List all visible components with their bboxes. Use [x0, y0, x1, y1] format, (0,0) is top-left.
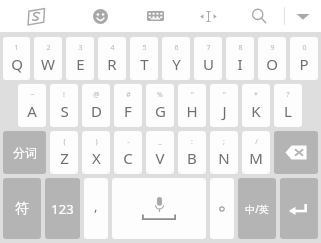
- staticText: C: [123, 148, 133, 168]
- staticText: 0: [302, 43, 307, 53]
- button[interactable]: 分词: [3, 131, 46, 174]
- button[interactable]: 9: [258, 37, 286, 80]
- button[interactable]: %: [146, 84, 174, 127]
- staticText: 123: [51, 200, 74, 218]
- button[interactable]: 5: [130, 37, 158, 80]
- staticText: 1: [14, 43, 19, 53]
- button[interactable]: Keyboard layout: [128, 0, 182, 32]
- staticText: 3: [78, 43, 83, 53]
- staticText: ?: [286, 90, 290, 100]
- staticText: O: [266, 54, 278, 74]
- staticText: 符: [15, 200, 29, 218]
- staticText: W: [41, 54, 55, 74]
- staticText: *: [254, 90, 258, 100]
- staticText: ): [95, 137, 98, 147]
- button[interactable]: _: [146, 131, 174, 174]
- button[interactable]: Sogou input menu: [0, 0, 72, 32]
- staticText: 2: [46, 43, 51, 53]
- button[interactable]: 0: [290, 37, 318, 80]
- staticText: P: [299, 54, 309, 74]
- staticText: T: [140, 54, 149, 74]
- button[interactable]: Enter: [280, 178, 318, 239]
- staticText: %: [157, 90, 163, 100]
- staticText: ;: [223, 137, 225, 147]
- staticText: K: [251, 101, 261, 121]
- staticText: M: [249, 148, 263, 168]
- button[interactable]: 1: [3, 37, 30, 80]
- button[interactable]: Space, voice input: [112, 178, 206, 239]
- button[interactable]: ": [210, 84, 238, 127]
- staticText: I: [237, 54, 243, 74]
- staticText: ,: [94, 197, 98, 215]
- staticText: H: [186, 101, 198, 121]
- button[interactable]: /: [242, 131, 270, 174]
- button[interactable]: ,: [84, 178, 108, 239]
- button[interactable]: Hide keyboard: [285, 0, 321, 32]
- staticText: D: [91, 101, 102, 121]
- button[interactable]: 123: [45, 178, 80, 239]
- button[interactable]: (: [50, 131, 78, 174]
- button[interactable]: #: [114, 84, 142, 127]
- staticText: !: [63, 90, 65, 100]
- staticText: E: [76, 54, 85, 74]
- staticText: 分词: [13, 145, 37, 160]
- staticText: (: [63, 137, 66, 147]
- staticText: 4: [110, 43, 115, 53]
- staticText: 8: [238, 43, 243, 53]
- staticText: Y: [172, 54, 181, 74]
- button[interactable]: :: [178, 131, 206, 174]
- button[interactable]: 3: [66, 37, 94, 80]
- button[interactable]: 2: [34, 37, 62, 80]
- button[interactable]: Search: [234, 0, 284, 32]
- button[interactable]: Move cursor: [182, 0, 234, 32]
- button[interactable]: !: [50, 84, 78, 127]
- button[interactable]: -: [114, 131, 142, 174]
- staticText: V: [155, 148, 165, 168]
- staticText: B: [187, 148, 197, 168]
- staticText: 5: [142, 43, 147, 53]
- button[interactable]: 6: [162, 37, 190, 80]
- staticText: 9: [270, 43, 275, 53]
- staticText: :: [191, 137, 193, 147]
- staticText: S: [60, 101, 69, 121]
- button[interactable]: ?: [274, 84, 302, 127]
- button[interactable]: 符: [3, 178, 41, 239]
- staticText: -: [127, 137, 130, 147]
- button[interactable]: Emoji: [72, 0, 128, 32]
- staticText: F: [124, 101, 132, 121]
- button[interactable]: ): [82, 131, 110, 174]
- staticText: U: [203, 54, 214, 74]
- staticText: ": [223, 90, 226, 100]
- button[interactable]: @: [82, 84, 110, 127]
- staticText: 7: [206, 43, 211, 53]
- staticText: J: [222, 101, 227, 121]
- button[interactable]: Backspace: [274, 131, 318, 174]
- staticText: 中/英: [245, 202, 269, 216]
- button[interactable]: [210, 178, 234, 239]
- staticText: N: [218, 148, 230, 168]
- button[interactable]: 中/英: [238, 178, 276, 239]
- staticText: _: [158, 137, 162, 147]
- staticText: G: [155, 101, 166, 121]
- staticText: L: [284, 101, 292, 121]
- button[interactable]: ~: [18, 84, 46, 127]
- staticText: X: [92, 148, 101, 168]
- staticText: 6: [174, 43, 179, 53]
- button[interactable]: ;: [210, 131, 238, 174]
- staticText: #: [126, 90, 131, 100]
- button[interactable]: 7: [194, 37, 222, 80]
- staticText: R: [107, 54, 117, 74]
- staticText: Z: [60, 148, 69, 168]
- button[interactable]: 4: [98, 37, 126, 80]
- staticText: ~: [30, 90, 35, 100]
- staticText: /: [255, 137, 258, 147]
- staticText: A: [27, 101, 37, 121]
- staticText: ": [191, 90, 194, 100]
- button[interactable]: 8: [226, 37, 254, 80]
- button[interactable]: ": [178, 84, 206, 127]
- staticText: Q: [11, 54, 23, 74]
- staticText: @: [93, 90, 100, 100]
- button[interactable]: *: [242, 84, 270, 127]
